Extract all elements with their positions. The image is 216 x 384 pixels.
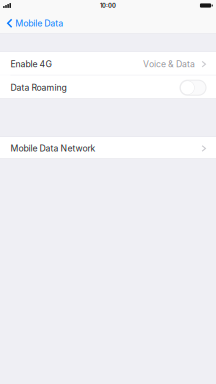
- staticText: Mobile Data Network: [11, 143, 96, 154]
- staticText: 10:00: [100, 2, 116, 9]
- staticText: Mobile Data: [15, 18, 63, 28]
- staticText: Enable 4G: [11, 59, 52, 69]
- staticText: Data Roaming: [11, 82, 67, 93]
- button[interactable]: Mobile Data: [0, 12, 68, 31]
- button[interactable]: Mobile Data Network: [0, 137, 216, 158]
- button[interactable]: Enable 4G: [0, 52, 216, 75]
- staticText: Voice & Data: [143, 59, 195, 69]
